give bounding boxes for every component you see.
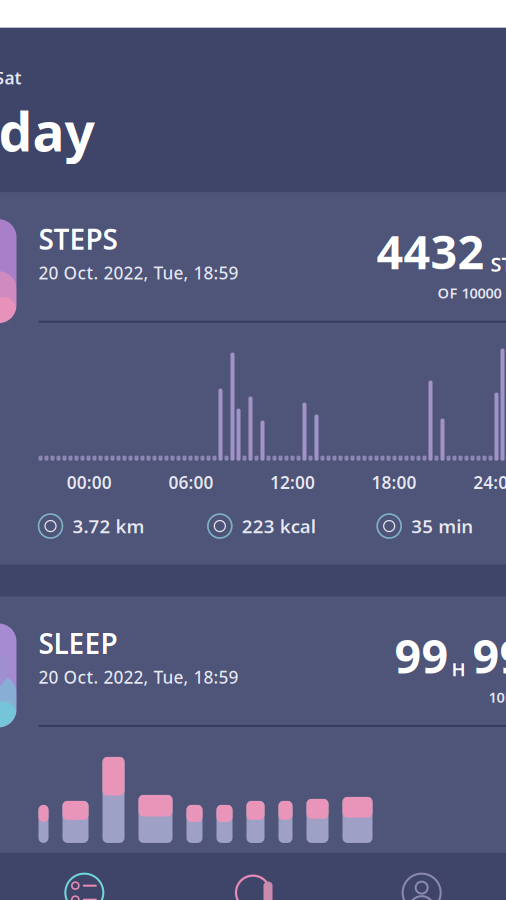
staticText: 20 Oct. 2022, Tue, 18:59: [38, 261, 238, 284]
button[interactable]: Profile: [337, 872, 506, 900]
staticText: SLEEP: [38, 624, 117, 662]
staticText: 12:00: [270, 471, 315, 494]
button[interactable]: Dashboard: [0, 872, 169, 900]
button[interactable]: STEPS: [0, 192, 506, 564]
staticText: 99: [472, 624, 506, 686]
staticText: 18:00: [372, 471, 417, 494]
button[interactable]: 35 min: [377, 514, 506, 538]
staticText: 00:00: [67, 471, 112, 494]
staticText: 10Hours: [488, 687, 506, 707]
button[interactable]: SLEEP: [0, 596, 506, 853]
button[interactable]: Device: [169, 872, 337, 900]
staticText: 223 kcal: [242, 514, 316, 538]
staticText: 02-09, Sat: [0, 66, 21, 89]
staticText: 24:00: [473, 471, 506, 494]
staticText: STEPS: [490, 251, 506, 277]
staticText: STEPS: [38, 220, 117, 257]
staticText: 99: [394, 624, 448, 686]
button[interactable]: 223 kcal: [208, 514, 377, 538]
staticText: H: [451, 657, 465, 681]
staticText: 20 Oct. 2022, Tue, 18:59: [38, 666, 238, 689]
staticText: Today: [0, 95, 94, 166]
staticText: 3.72 km: [72, 514, 144, 538]
staticText: OF 10000 STEPS: [437, 283, 506, 303]
staticText: 4432: [376, 220, 484, 282]
button[interactable]: 3.72 km: [38, 514, 208, 538]
staticText: 06:00: [168, 471, 213, 494]
staticText: 35 min: [411, 514, 473, 538]
